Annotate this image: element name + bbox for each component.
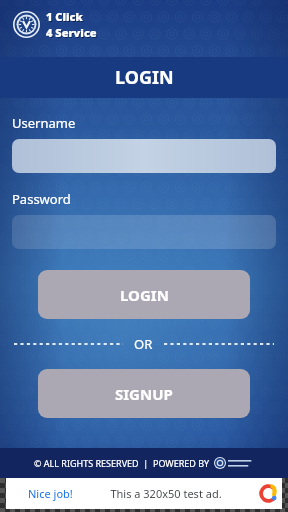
staticText: Password xyxy=(12,190,71,208)
staticText: 1 Click xyxy=(46,9,83,24)
staticText: This a 320x50 test ad. xyxy=(110,486,222,501)
staticText: 1 Click xyxy=(47,10,84,25)
button[interactable]: Password input xyxy=(12,215,276,249)
button[interactable]: LOGIN xyxy=(38,270,250,319)
staticText: 4 Service xyxy=(46,25,97,40)
staticText: Nice job! xyxy=(28,486,73,501)
button[interactable]: Advertisement xyxy=(6,478,282,509)
staticText: LOGIN xyxy=(115,65,174,90)
staticText: Username xyxy=(12,114,76,132)
staticText: LOGIN xyxy=(120,285,169,305)
button[interactable]: SIGNUP xyxy=(38,369,250,418)
staticText: OR xyxy=(134,335,153,353)
staticText: SIGNUP xyxy=(115,384,173,404)
button[interactable]: Username input xyxy=(12,139,276,173)
staticText: © ALL RIGHTS RESERVED | POWERED BY xyxy=(34,457,210,469)
staticText: 4 Service xyxy=(47,26,98,41)
